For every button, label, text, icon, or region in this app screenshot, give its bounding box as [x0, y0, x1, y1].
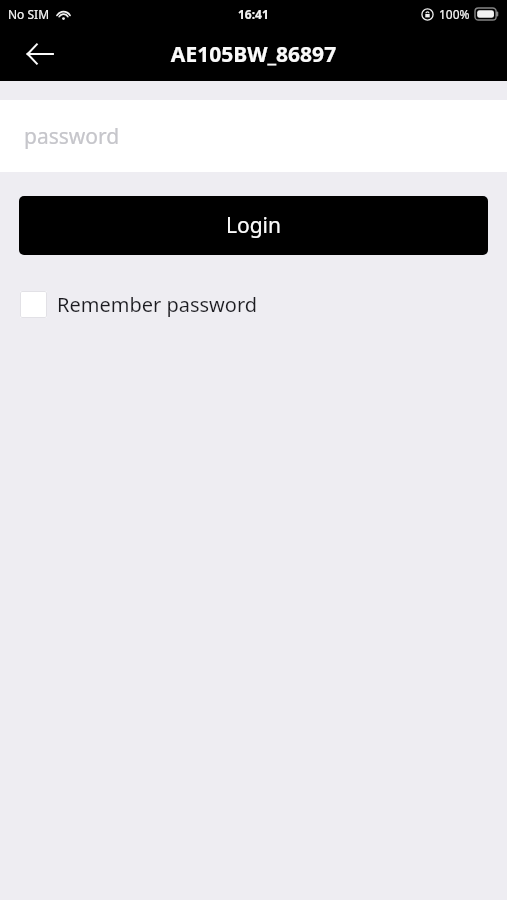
staticText: No SIM: [8, 6, 50, 22]
staticText: 16:41: [238, 6, 269, 22]
button[interactable]: password: [0, 100, 507, 172]
staticText: Remember password: [57, 291, 258, 318]
staticText: password: [24, 122, 120, 151]
staticText: 100%: [439, 6, 470, 22]
button[interactable]: Remember password: [20, 287, 507, 321]
button[interactable]: Back: [14, 28, 66, 80]
button[interactable]: Login: [19, 196, 488, 255]
staticText: AE105BW_86897: [0, 40, 507, 69]
staticText: Login: [226, 211, 282, 240]
